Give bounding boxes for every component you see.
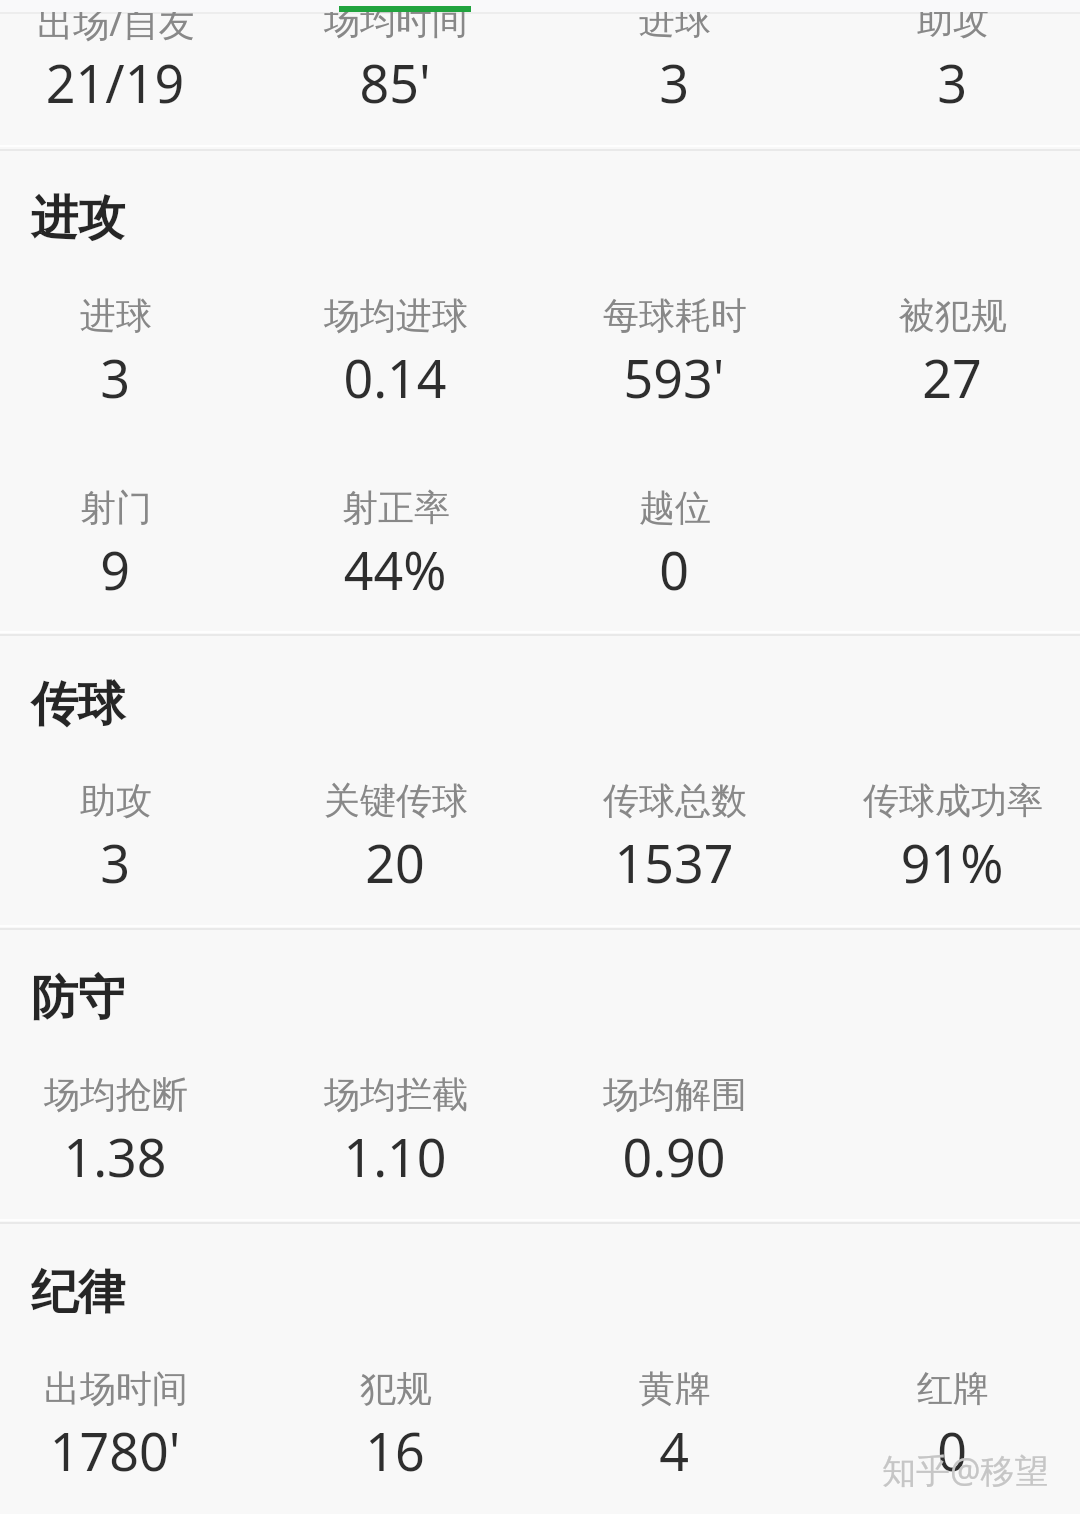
staticText: 传球总数 — [535, 778, 815, 823]
staticText: 场均解围 — [535, 1072, 815, 1117]
staticText: 27 — [812, 342, 1080, 413]
staticText: 进攻 — [31, 189, 125, 248]
button[interactable]: 传球总数 — [534, 765, 814, 957]
staticText: 被犯规 — [813, 293, 1080, 338]
staticText: 9 — [0, 534, 255, 605]
staticText: 射正率 — [256, 485, 536, 530]
button[interactable]: 助攻 — [0, 765, 255, 957]
button[interactable]: 关键传球 — [255, 765, 535, 957]
staticText: 关键传球 — [256, 778, 536, 823]
staticText: 场均拦截 — [256, 1072, 536, 1117]
staticText: 越位 — [535, 485, 815, 530]
staticText: 1.38 — [0, 1121, 255, 1192]
staticText: 593' — [534, 342, 814, 413]
button[interactable]: 黄牌 — [534, 1353, 814, 1514]
staticText: 助攻 — [813, 0, 1080, 43]
staticText: 防守 — [31, 969, 125, 1028]
staticText: 3 — [534, 47, 814, 118]
staticText: 每球耗时 — [535, 293, 815, 338]
button[interactable]: 射门 — [0, 472, 255, 664]
button[interactable]: 场均抢断 — [0, 1059, 255, 1251]
staticText: 出场时间 — [0, 1366, 256, 1411]
staticText: 射门 — [0, 485, 256, 530]
button[interactable]: 被犯规 — [812, 280, 1080, 472]
button[interactable]: 出场时间 — [0, 1353, 255, 1514]
staticText: 黄牌 — [535, 1366, 815, 1411]
staticText: 犯规 — [256, 1366, 536, 1411]
staticText: 21/19 — [0, 47, 255, 118]
button[interactable]: 越位 — [534, 472, 814, 664]
staticText: 出场/自友 — [0, 0, 256, 47]
button[interactable]: 场均解围 — [534, 1059, 814, 1251]
staticText: 3 — [0, 342, 255, 413]
staticText: 传球成功率 — [813, 778, 1080, 823]
staticText: 20 — [255, 827, 535, 898]
staticText: 0 — [534, 534, 814, 605]
staticText: 44% — [255, 534, 535, 605]
button[interactable]: Season stats tab — [270, 0, 540, 12]
button[interactable]: 出场/自友 — [0, 0, 255, 177]
button[interactable]: 进球 — [0, 280, 255, 472]
button[interactable]: 助攻 — [812, 0, 1080, 177]
staticText: 场均抢断 — [0, 1072, 256, 1117]
button[interactable]: 犯规 — [255, 1353, 535, 1514]
staticText: 场均进球 — [256, 293, 536, 338]
staticText: 0.90 — [534, 1121, 814, 1192]
staticText: 4 — [534, 1415, 814, 1486]
staticText: 场均时间 — [256, 0, 536, 43]
staticText: 0.14 — [255, 342, 535, 413]
staticText: 91% — [812, 827, 1080, 898]
staticText: 85' — [255, 47, 535, 118]
button[interactable]: 每球耗时 — [534, 280, 814, 472]
staticText: 助攻 — [0, 778, 256, 823]
staticText: 1.10 — [255, 1121, 535, 1192]
staticText: 知乎@移望 — [882, 1447, 1049, 1493]
staticText: 3 — [812, 47, 1080, 118]
button[interactable]: 传球成功率 — [812, 765, 1080, 957]
staticText: 进球 — [535, 0, 815, 43]
staticText: 0 — [812, 1415, 1080, 1486]
button[interactable]: 场均拦截 — [255, 1059, 535, 1251]
button[interactable]: 红牌 — [812, 1353, 1080, 1514]
button[interactable]: 场均进球 — [255, 280, 535, 472]
staticText: 1780' — [0, 1415, 255, 1486]
button[interactable]: 场均时间 — [255, 0, 535, 177]
staticText: 1537 — [534, 827, 814, 898]
button[interactable]: 射正率 — [255, 472, 535, 664]
staticText: 3 — [0, 827, 255, 898]
staticText: 16 — [255, 1415, 535, 1486]
staticText: 进球 — [0, 293, 256, 338]
staticText: 传球 — [31, 675, 125, 734]
staticText: 纪律 — [31, 1263, 125, 1322]
staticText: 红牌 — [813, 1366, 1080, 1411]
button[interactable]: 进球 — [534, 0, 814, 177]
